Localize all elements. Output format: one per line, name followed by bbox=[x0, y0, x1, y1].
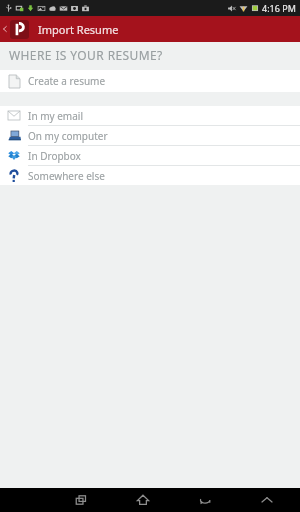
staticText: 4:16 PM bbox=[262, 2, 296, 14]
button[interactable]: Recents bbox=[64, 488, 98, 512]
button[interactable]: On my computer bbox=[0, 126, 300, 145]
button[interactable]: Somewhere else bbox=[0, 166, 300, 185]
staticText: On my computer bbox=[28, 129, 108, 143]
staticText: Create a resume bbox=[28, 74, 106, 88]
button[interactable]: Back bbox=[0, 16, 10, 42]
button[interactable]: Create a resume bbox=[0, 70, 300, 92]
staticText: WHERE IS YOUR RESUME? bbox=[9, 47, 163, 63]
button[interactable]: Back bbox=[188, 488, 222, 512]
button[interactable]: App logo bbox=[10, 20, 29, 39]
staticText: In my email bbox=[28, 109, 83, 123]
staticText: Import Resume bbox=[38, 22, 119, 37]
button[interactable]: More options bbox=[250, 488, 284, 512]
button[interactable]: In my email bbox=[0, 106, 300, 125]
staticText: In Dropbox bbox=[28, 149, 81, 163]
staticText: Somewhere else bbox=[28, 169, 105, 183]
button[interactable]: In Dropbox bbox=[0, 146, 300, 165]
button[interactable]: Home bbox=[126, 488, 160, 512]
